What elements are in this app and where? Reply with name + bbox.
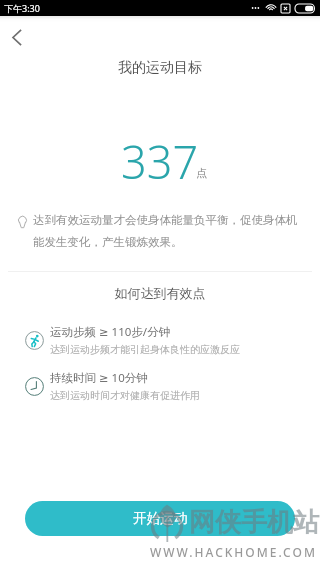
staticText: 网侠手机站: [189, 506, 319, 539]
staticText: 如何达到有效点: [0, 285, 320, 301]
staticText: 我的运动目标: [0, 59, 320, 77]
staticText: 达到运动时间才对健康有促进作用: [50, 389, 200, 402]
staticText: 点: [196, 166, 207, 180]
button[interactable]: 开始运动: [25, 501, 295, 536]
button[interactable]: Back: [0, 17, 37, 57]
staticText: WWW.HACKHOME.COM: [150, 544, 317, 560]
staticText: 达到有效运动量才会使身体能量负平衡，促使身体机能发生变化，产生锻炼效果。: [33, 213, 301, 250]
staticText: 达到运动步频才能引起身体良性的应激反应: [50, 343, 240, 356]
button[interactable]: 持续时间 ≥ 10分钟: [25, 370, 304, 402]
staticText: 337: [121, 131, 199, 192]
staticText: 开始运动: [133, 510, 188, 527]
button[interactable]: 运动步频 ≥ 110步/分钟: [25, 324, 304, 356]
staticText: 下午3:30: [4, 2, 40, 14]
staticText: 持续时间 ≥ 10分钟: [50, 370, 148, 386]
staticText: 运动步频 ≥ 110步/分钟: [50, 324, 171, 340]
